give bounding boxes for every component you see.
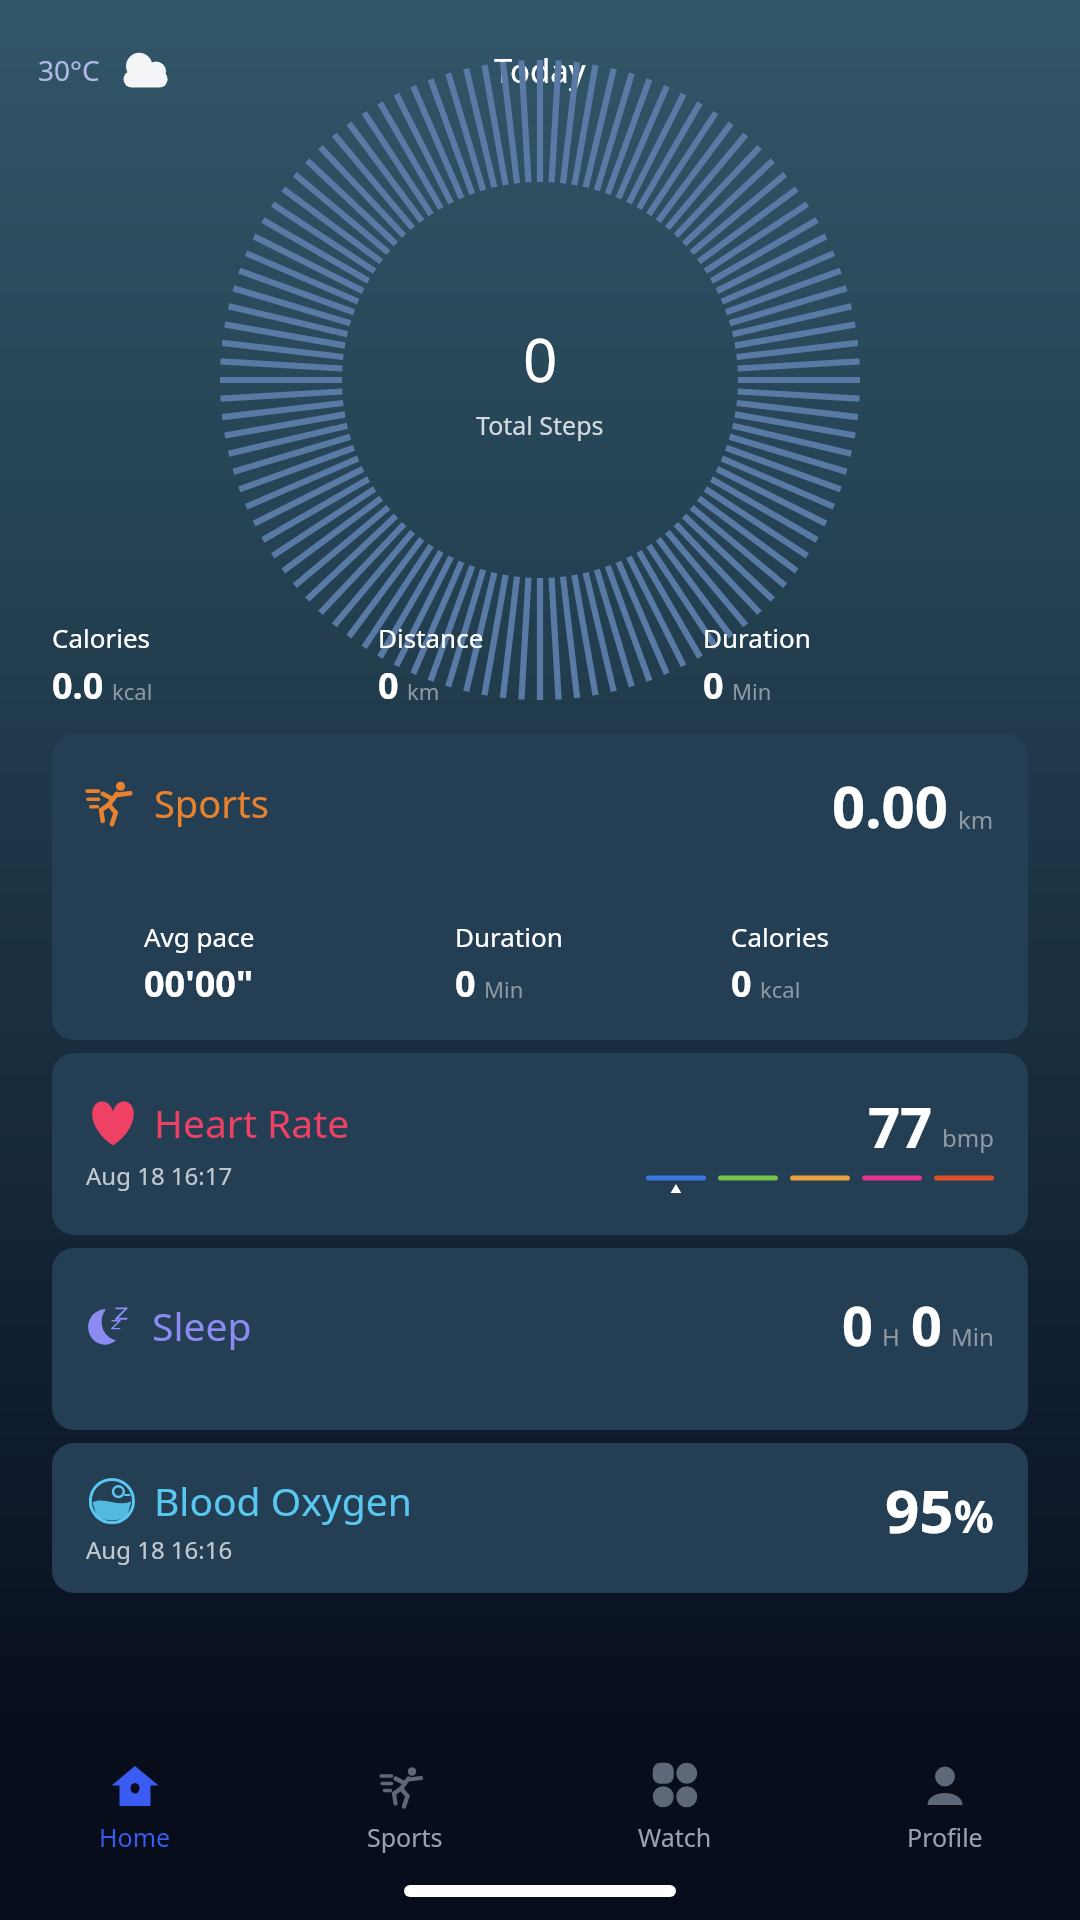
staticText: Min bbox=[484, 974, 524, 1004]
staticText: 77 bbox=[868, 1088, 933, 1164]
staticText: Watch bbox=[638, 1820, 712, 1854]
staticText: Total Steps bbox=[476, 408, 604, 442]
button[interactable]: Sleep bbox=[52, 1248, 1028, 1430]
staticText: Sports bbox=[367, 1820, 443, 1854]
staticText: 00'00" bbox=[144, 959, 254, 1008]
staticText: H bbox=[882, 1320, 900, 1353]
staticText: % bbox=[954, 1486, 994, 1546]
staticText: km bbox=[958, 803, 994, 836]
button[interactable]: Heart Rate bbox=[52, 1053, 1028, 1235]
staticText: bmp bbox=[942, 1121, 994, 1154]
staticText: Profile bbox=[907, 1820, 983, 1854]
staticText: Aug 18 16:17 bbox=[86, 1159, 233, 1192]
button[interactable]: Home bbox=[0, 1748, 270, 1854]
staticText: Duration bbox=[703, 620, 811, 655]
button[interactable]: 30°C bbox=[34, 46, 178, 94]
button[interactable]: Profile bbox=[810, 1748, 1080, 1854]
staticText: 95 bbox=[885, 1469, 954, 1551]
staticText: 0.00 bbox=[832, 766, 948, 845]
staticText: Avg pace bbox=[144, 919, 255, 954]
staticText: kcal bbox=[112, 676, 153, 706]
staticText: Duration bbox=[455, 919, 563, 954]
staticText: Calories bbox=[52, 620, 151, 655]
staticText: 0 bbox=[703, 661, 724, 710]
staticText: Home bbox=[99, 1820, 171, 1854]
staticText: Sports bbox=[154, 777, 269, 829]
button[interactable]: Watch bbox=[540, 1748, 810, 1854]
staticText: Min bbox=[732, 676, 772, 706]
staticText: Aug 18 16:16 bbox=[86, 1533, 233, 1566]
staticText: 0 bbox=[911, 1288, 942, 1362]
staticText: Heart Rate bbox=[154, 1096, 350, 1149]
button[interactable]: Calories bbox=[52, 620, 378, 710]
staticText: km bbox=[407, 676, 440, 706]
staticText: Calories bbox=[731, 919, 830, 954]
staticText: 0 bbox=[842, 1288, 873, 1362]
staticText: 30°C bbox=[38, 51, 100, 89]
staticText: kcal bbox=[760, 974, 801, 1004]
button[interactable]: Sports bbox=[270, 1748, 540, 1854]
staticText: 0 bbox=[523, 318, 558, 400]
staticText: Today bbox=[494, 48, 586, 93]
staticText: Distance bbox=[378, 620, 484, 655]
button[interactable]: Duration bbox=[703, 620, 1028, 710]
staticText: 0 bbox=[455, 959, 476, 1008]
staticText: Sleep bbox=[152, 1299, 252, 1352]
staticText: 0.0 bbox=[52, 661, 104, 710]
staticText: 0 bbox=[378, 661, 399, 710]
staticText: Min bbox=[951, 1320, 994, 1353]
staticText: Blood Oxygen bbox=[154, 1474, 412, 1527]
button[interactable]: Distance bbox=[378, 620, 703, 710]
button[interactable]: Blood Oxygen bbox=[52, 1443, 1028, 1593]
staticText: 0 bbox=[731, 959, 752, 1008]
button[interactable]: Sports bbox=[52, 734, 1028, 1040]
